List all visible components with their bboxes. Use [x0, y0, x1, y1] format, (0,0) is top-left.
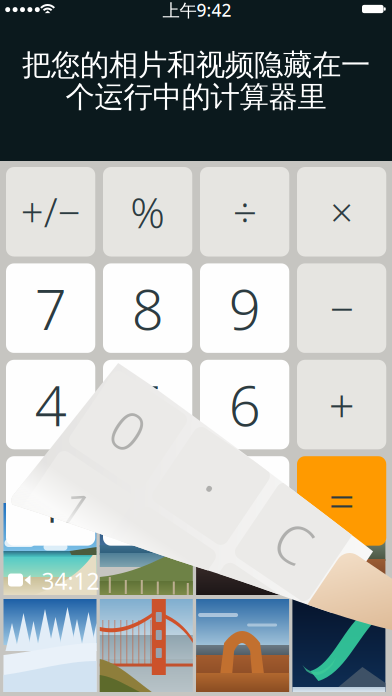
staticText: 把您的相片和视频隐藏在一 — [22, 47, 370, 83]
button[interactable]: 4 — [6, 360, 95, 449]
staticText: ÷ — [233, 183, 257, 240]
staticText: 1 — [73, 544, 103, 614]
staticText: 5 — [132, 367, 164, 442]
staticText: % — [130, 183, 165, 240]
staticText: C — [272, 447, 305, 518]
staticText: 8 — [132, 271, 164, 345]
button[interactable]: + — [297, 360, 386, 449]
button[interactable]: 6 — [200, 360, 289, 449]
button[interactable]: − — [297, 263, 386, 353]
button[interactable]: +/− — [6, 167, 95, 256]
staticText: + — [329, 374, 355, 435]
staticText: 6 — [229, 367, 261, 442]
button[interactable]: 5 — [103, 360, 192, 449]
button[interactable]: 3 — [200, 456, 289, 546]
button[interactable]: ÷ — [200, 167, 289, 256]
staticText: +/− — [21, 185, 81, 238]
button[interactable]: 7 — [6, 263, 95, 353]
staticText: 9 — [229, 271, 261, 345]
staticText: − — [330, 280, 354, 336]
staticText: 34:12 — [41, 566, 99, 596]
staticText: 3 — [229, 464, 261, 538]
staticText: 1 — [35, 464, 67, 538]
staticText: 个运行中的计算器里 — [65, 79, 326, 115]
button[interactable]: 8 — [103, 263, 192, 353]
staticText: 7 — [35, 271, 67, 345]
button[interactable]: 2 — [103, 456, 192, 546]
staticText: 上午9:42 — [162, 0, 231, 21]
staticText: 4 — [35, 367, 67, 442]
staticText: × — [330, 185, 353, 238]
button[interactable]: 1 — [6, 456, 95, 546]
staticText: = — [329, 471, 355, 531]
staticText: 0 — [73, 447, 103, 518]
button[interactable]: 9 — [200, 263, 289, 353]
button[interactable]: × — [297, 167, 386, 256]
button[interactable]: = — [297, 456, 386, 546]
button[interactable]: % — [103, 167, 192, 256]
